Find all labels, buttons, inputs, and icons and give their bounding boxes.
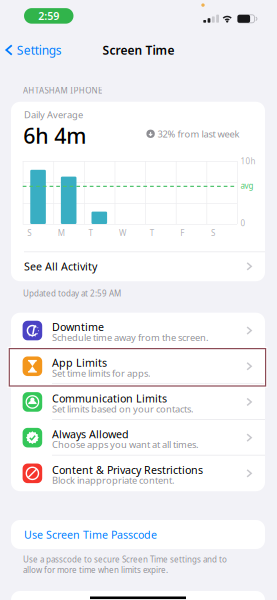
staticText: Downtime (52, 320, 104, 334)
staticText: App Limits (52, 356, 107, 370)
staticText: Updated today at 2:59 AM (23, 288, 121, 299)
staticText: See All Activity (24, 259, 97, 273)
staticText: Daily Average (24, 108, 83, 121)
staticText: 0 (241, 218, 246, 228)
button[interactable]: See All Activity (11, 251, 265, 281)
staticText: 6h 4m (23, 121, 86, 150)
staticText: Choose apps you want at all times. (52, 438, 199, 451)
staticText: Content & Privacy Restrictions (52, 463, 203, 477)
staticText: Settings (17, 42, 62, 58)
staticText: W (119, 227, 126, 238)
staticText: Set limits based on your contacts. (52, 403, 194, 415)
staticText: Use Screen Time Passcode (24, 527, 157, 542)
staticText: F (180, 227, 184, 238)
staticText: S (211, 227, 215, 238)
staticText: avg (241, 180, 254, 191)
staticText: T (150, 227, 154, 238)
button[interactable]: App Limits (11, 348, 265, 384)
button[interactable]: Downtime (11, 313, 265, 348)
staticText: Schedule time away from the screen. (52, 331, 209, 344)
staticText: Set time limits for apps. (52, 367, 151, 379)
staticText: Block inappropriate content. (52, 474, 175, 486)
button[interactable]: Content & Privacy Restrictions (11, 455, 265, 491)
staticText: Always Allowed (52, 427, 129, 441)
staticText: S (27, 227, 31, 238)
staticText: Communication Limits (52, 391, 167, 405)
button[interactable]: Always Allowed (11, 420, 265, 455)
staticText: 10h (241, 156, 256, 166)
button[interactable]: Settings (0, 39, 68, 61)
staticText: Screen Time (102, 42, 174, 58)
button[interactable]: Use Screen Time Passcode (11, 520, 265, 549)
staticText: M (58, 227, 65, 238)
button[interactable]: Communication Limits (11, 384, 265, 420)
staticText: 32% from last week (157, 128, 239, 140)
staticText: Use a passcode to secure Screen Time set… (23, 554, 227, 575)
staticText: T (88, 227, 92, 238)
staticText: 2:59 (38, 9, 59, 23)
staticText: AHTASHAM IPHONE (23, 85, 102, 96)
